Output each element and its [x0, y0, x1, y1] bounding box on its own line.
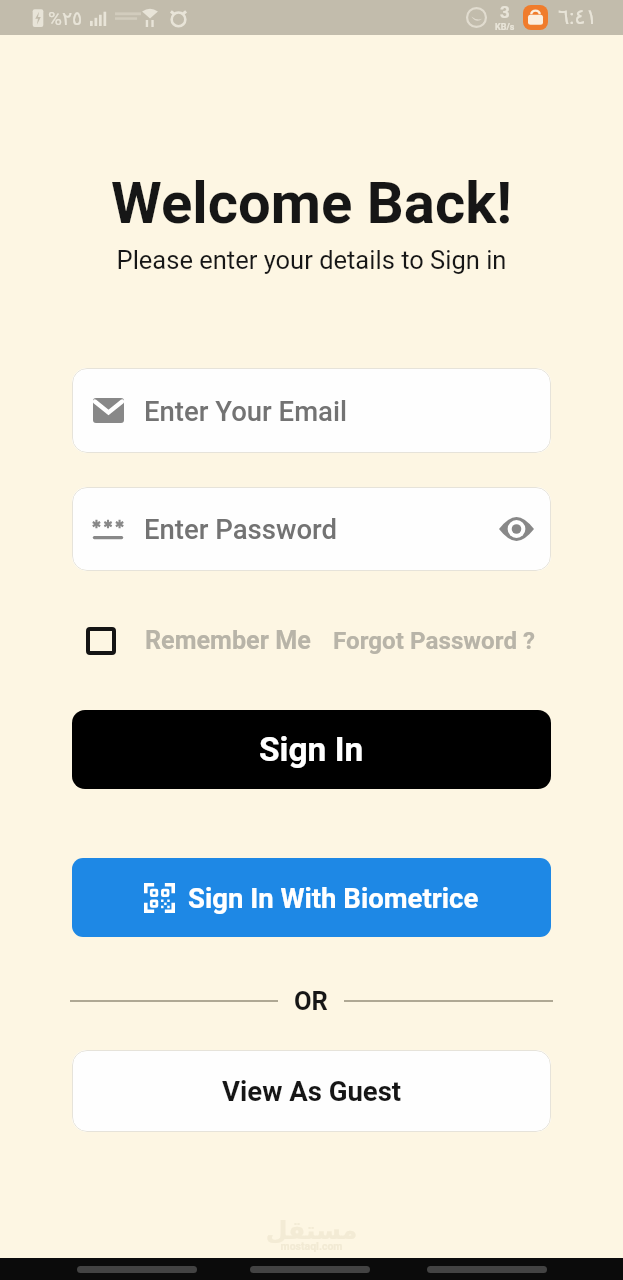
- button[interactable]: Remember Me: [145, 626, 311, 656]
- button[interactable]: Enter Your Email: [72, 368, 551, 453]
- staticText: View As Guest: [222, 1075, 402, 1107]
- button[interactable]: Home: [250, 1266, 370, 1273]
- button[interactable]: View As Guest: [72, 1050, 551, 1132]
- button[interactable]: Sign In: [72, 710, 551, 789]
- staticText: Welcome Back!: [0, 169, 623, 237]
- staticText: Sign In: [259, 730, 364, 769]
- staticText: %٢٥: [48, 7, 83, 29]
- staticText: KB/s: [495, 22, 515, 33]
- button[interactable]: Remember me: [86, 627, 116, 655]
- button[interactable]: Back: [77, 1266, 197, 1273]
- staticText: ٦:٤١: [558, 5, 597, 30]
- button[interactable]: Show password: [496, 509, 536, 549]
- button[interactable]: Recents: [427, 1266, 547, 1273]
- button[interactable]: Sign In With Biometrice: [72, 858, 551, 937]
- staticText: Sign In With Biometrice: [188, 882, 479, 914]
- staticText: Enter Password: [144, 513, 496, 545]
- button[interactable]: Forgot Password ?: [333, 627, 536, 655]
- staticText: OR: [294, 986, 328, 1016]
- staticText: Enter Your Email: [144, 395, 348, 427]
- button[interactable]: Enter Password: [72, 487, 551, 571]
- staticText: Please enter your details to Sign in: [0, 245, 623, 275]
- staticText: 3: [500, 2, 510, 22]
